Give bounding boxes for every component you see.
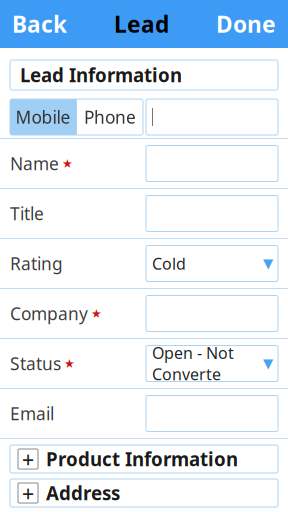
button[interactable]: Phone: [77, 99, 143, 135]
button[interactable]: Back: [4, 3, 75, 45]
staticText: Rating: [10, 252, 63, 275]
staticText: Done: [216, 9, 276, 39]
button[interactable]: Done: [208, 3, 284, 45]
staticText: Address: [46, 481, 120, 505]
button[interactable]: [146, 99, 278, 135]
staticText: Product Information: [46, 447, 238, 471]
staticText: Cold: [152, 253, 186, 274]
staticText: Lead Information: [20, 63, 182, 87]
staticText: +: [22, 479, 34, 507]
button[interactable]: [146, 145, 278, 181]
staticText: Mobile: [15, 105, 70, 128]
staticText: Status: [10, 352, 61, 375]
staticText: ★: [91, 307, 102, 320]
staticText: +: [22, 445, 34, 473]
button[interactable]: [146, 195, 278, 231]
staticText: ★: [62, 157, 73, 170]
button[interactable]: [146, 395, 278, 431]
button[interactable]: [146, 295, 278, 331]
staticText: Open - Not Converte: [152, 342, 234, 385]
staticText: Email: [10, 402, 54, 425]
staticText: ★: [64, 357, 75, 370]
button[interactable]: Mobile: [10, 99, 76, 135]
staticText: Name: [10, 152, 59, 175]
staticText: Lead: [114, 9, 169, 39]
staticText: ▼: [263, 356, 273, 371]
staticText: Phone: [84, 105, 136, 128]
staticText: Company: [10, 302, 88, 325]
button[interactable]: Open - Not Converte: [146, 345, 278, 381]
button[interactable]: +: [10, 445, 278, 473]
button[interactable]: +: [10, 479, 278, 507]
staticText: ▼: [263, 256, 273, 271]
staticText: Title: [10, 202, 44, 225]
staticText: Back: [12, 9, 67, 39]
button[interactable]: Cold: [146, 245, 278, 281]
